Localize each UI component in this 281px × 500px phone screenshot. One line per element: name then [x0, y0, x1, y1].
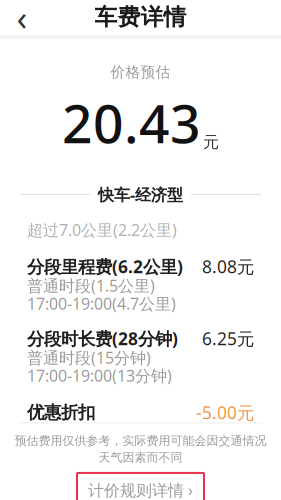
staticText: 普通时段(1.5公里)	[27, 275, 155, 296]
staticText: 车费详情	[94, 3, 186, 31]
staticText: 优惠折扣	[27, 402, 95, 423]
staticText: 天气因素而不同	[98, 450, 182, 465]
staticText: 分段里程费(6.2公里)	[27, 255, 183, 278]
button[interactable]: Back	[0, 0, 44, 35]
staticText: 分段时长费(28分钟)	[27, 327, 178, 350]
staticText: 17:00-19:00(4.7公里)	[27, 293, 176, 314]
staticText: 8.08元	[202, 255, 254, 278]
staticText: 17:00-19:00(13分钟)	[27, 365, 172, 386]
staticText: 元	[203, 132, 219, 152]
staticText: -5.00元	[196, 401, 254, 424]
staticText: 20.43	[62, 87, 201, 158]
staticText: ‹	[16, 0, 27, 40]
staticText: 预估费用仅供参考，实际费用可能会因交通情况	[14, 433, 266, 448]
staticText: 超过7.0公里(2.2公里)	[27, 219, 177, 240]
button[interactable]: 计价规则详情 ›	[77, 473, 204, 500]
staticText: 6.25元	[202, 327, 254, 350]
staticText: 价格预估	[110, 63, 170, 81]
staticText: 计价规则详情 ›	[88, 479, 193, 500]
staticText: 普通时段(15分钟)	[27, 347, 151, 368]
staticText: 快车-经济型	[98, 184, 183, 205]
